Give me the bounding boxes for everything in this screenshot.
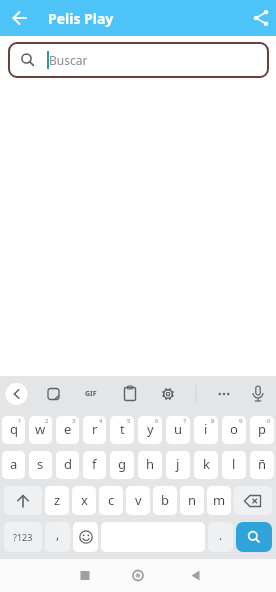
staticText: w bbox=[35, 420, 46, 438]
button[interactable]: x bbox=[72, 486, 96, 515]
button[interactable] bbox=[40, 376, 80, 412]
staticText: g bbox=[118, 455, 126, 473]
button[interactable]: ñ bbox=[250, 451, 274, 479]
staticText: 5 bbox=[127, 417, 131, 425]
staticText: c bbox=[108, 491, 115, 509]
button[interactable] bbox=[0, 0, 36, 36]
staticText: ñ bbox=[258, 455, 267, 473]
staticText: a bbox=[10, 455, 18, 473]
button[interactable] bbox=[73, 522, 98, 552]
staticText: s bbox=[37, 455, 44, 473]
button[interactable]: d bbox=[56, 451, 79, 479]
staticText: ?123 bbox=[13, 531, 33, 543]
staticText: 3 bbox=[72, 417, 76, 425]
staticText: 9 bbox=[239, 417, 243, 425]
staticText: 4 bbox=[99, 417, 103, 425]
staticText: p bbox=[258, 420, 266, 438]
button[interactable]: i bbox=[194, 416, 218, 444]
button[interactable]: b bbox=[153, 486, 177, 515]
button[interactable]: o bbox=[222, 416, 246, 444]
staticText: 6 bbox=[155, 417, 159, 425]
button[interactable]: s bbox=[29, 451, 52, 479]
button[interactable]: h bbox=[138, 451, 162, 479]
staticText: f bbox=[92, 455, 97, 473]
button[interactable]: u bbox=[166, 416, 190, 444]
button[interactable]: n bbox=[180, 486, 204, 515]
button[interactable]: m bbox=[207, 486, 231, 515]
button[interactable]: e bbox=[56, 416, 79, 444]
button[interactable]: q bbox=[2, 416, 25, 444]
button[interactable]: , bbox=[45, 522, 70, 552]
button[interactable]: p bbox=[250, 416, 274, 444]
staticText: e bbox=[64, 420, 72, 438]
staticText: Buscar bbox=[49, 52, 88, 68]
button[interactable]: v bbox=[126, 486, 150, 515]
staticText: l bbox=[232, 455, 236, 473]
staticText: z bbox=[54, 491, 61, 509]
button[interactable] bbox=[80, 376, 120, 412]
staticText: q bbox=[10, 420, 18, 438]
staticText: n bbox=[188, 491, 197, 509]
staticText: 0 bbox=[267, 417, 271, 425]
staticText: Pelis Play bbox=[48, 9, 114, 28]
staticText: v bbox=[135, 491, 142, 509]
button[interactable]: c bbox=[99, 486, 123, 515]
staticText: 7 bbox=[183, 417, 187, 425]
button[interactable]: j bbox=[166, 451, 190, 479]
staticText: m bbox=[213, 491, 226, 509]
button[interactable]: a bbox=[2, 451, 25, 479]
button[interactable]: w bbox=[29, 416, 52, 444]
staticText: r bbox=[92, 420, 98, 438]
button[interactable]: t bbox=[110, 416, 134, 444]
staticText: GIF bbox=[85, 389, 97, 399]
staticText: t bbox=[120, 420, 125, 438]
button[interactable]: k bbox=[194, 451, 218, 479]
button[interactable]: g bbox=[110, 451, 134, 479]
staticText: k bbox=[203, 455, 210, 473]
button[interactable] bbox=[198, 376, 237, 412]
staticText: 2 bbox=[45, 417, 49, 425]
button[interactable] bbox=[234, 486, 272, 515]
button[interactable]: l bbox=[222, 451, 246, 479]
button[interactable]: f bbox=[83, 451, 106, 479]
staticText: x bbox=[81, 491, 88, 509]
staticText: , bbox=[56, 526, 60, 542]
button[interactable]: ?123 bbox=[4, 522, 42, 552]
staticText: h bbox=[146, 455, 155, 473]
button[interactable]: r bbox=[83, 416, 106, 444]
button[interactable]: y bbox=[138, 416, 162, 444]
staticText: i bbox=[204, 420, 208, 438]
button[interactable] bbox=[236, 522, 272, 552]
staticText: 8 bbox=[211, 417, 215, 425]
staticText: b bbox=[161, 491, 169, 509]
staticText: 1 bbox=[18, 417, 22, 425]
button[interactable]: . bbox=[208, 522, 233, 552]
button[interactable]: Buscar bbox=[8, 42, 269, 78]
button[interactable] bbox=[240, 0, 276, 36]
staticText: j bbox=[176, 455, 180, 473]
button[interactable] bbox=[120, 376, 159, 412]
staticText: u bbox=[174, 420, 183, 438]
staticText: . bbox=[219, 527, 223, 543]
button[interactable] bbox=[4, 486, 42, 515]
staticText: o bbox=[230, 420, 238, 438]
staticText: d bbox=[64, 455, 72, 473]
staticText: y bbox=[147, 420, 154, 438]
button[interactable] bbox=[0, 376, 40, 412]
button[interactable] bbox=[237, 376, 276, 412]
button[interactable] bbox=[122, 559, 155, 592]
button[interactable]: z bbox=[45, 486, 69, 515]
button[interactable] bbox=[159, 376, 198, 412]
